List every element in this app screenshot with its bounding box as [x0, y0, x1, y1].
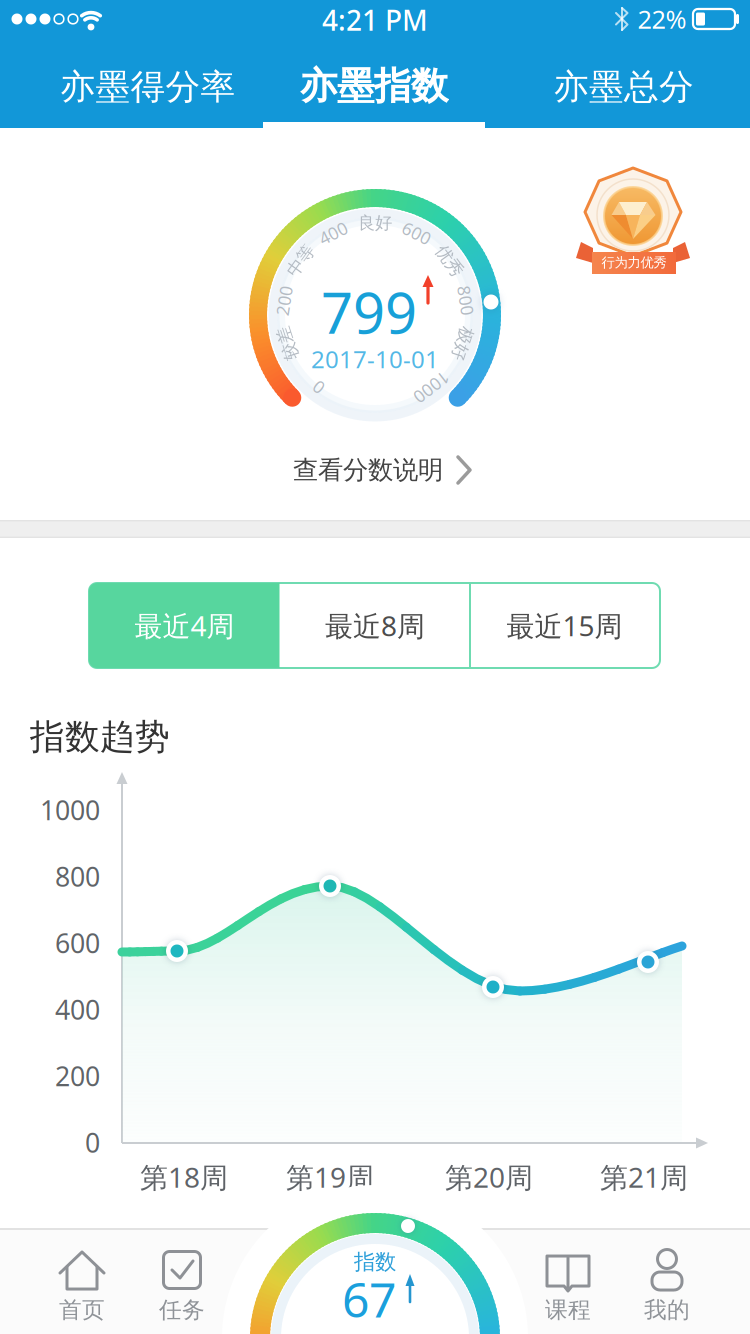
staticText: 良好 — [358, 212, 392, 234]
staticText: 799 — [321, 275, 417, 349]
staticText: 首页 — [59, 1296, 105, 1324]
staticText: 行为力优秀 — [601, 254, 666, 271]
staticText: 最近8周 — [325, 607, 425, 644]
staticText: 4:21 PM — [322, 1, 428, 39]
staticText: 较差 — [270, 333, 304, 354]
staticText: 亦墨总分 — [554, 66, 694, 108]
staticText: 200 — [269, 289, 299, 312]
staticText: 课程 — [545, 1296, 591, 1324]
staticText: 400 — [318, 221, 348, 244]
staticText: 极好 — [445, 333, 479, 354]
staticText: 最近4周 — [134, 607, 234, 644]
staticText: 查看分数说明 — [293, 454, 443, 485]
staticText: 200 — [55, 1058, 100, 1094]
staticText: 亦墨指数 — [300, 63, 448, 109]
staticText: 第21周 — [600, 1158, 688, 1196]
staticText: 600 — [55, 925, 100, 961]
staticText: 第18周 — [140, 1158, 228, 1196]
staticText: 22% — [637, 2, 686, 36]
staticText: 1000 — [412, 376, 452, 399]
staticText: 指数趋势 — [30, 716, 170, 758]
staticText: 最近15周 — [506, 607, 622, 644]
staticText: 优秀 — [432, 250, 466, 272]
staticText: 第19周 — [286, 1158, 374, 1196]
staticText: 中等 — [284, 250, 318, 272]
staticText: 400 — [55, 992, 100, 1027]
staticText: 我的 — [644, 1296, 690, 1324]
staticText: 67 — [342, 1267, 396, 1331]
staticText: 800 — [55, 859, 100, 894]
staticText: 1000 — [40, 792, 100, 828]
staticText: 0 — [313, 376, 323, 399]
staticText: 2017-10-01 — [311, 343, 439, 375]
staticText: 0 — [85, 1125, 100, 1160]
staticText: 600 — [402, 221, 432, 244]
staticText: 800 — [451, 289, 481, 312]
staticText: 指数 — [354, 1249, 396, 1275]
staticText: 亦墨得分率 — [60, 66, 235, 108]
staticText: 第20周 — [445, 1158, 533, 1196]
staticText: 任务 — [159, 1296, 205, 1324]
